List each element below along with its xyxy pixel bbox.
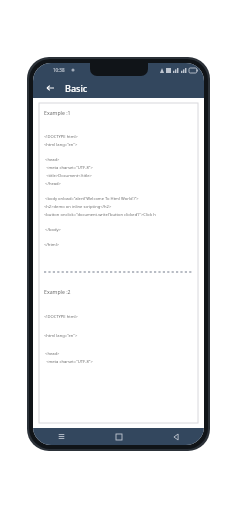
staticText: 10:38 (53, 67, 65, 73)
staticText: </head> (44, 181, 61, 187)
staticText: <head> (44, 351, 60, 357)
staticText: <h2>demo on inline scripting</h2> (44, 204, 112, 210)
button[interactable]: Home (90, 428, 147, 445)
staticText: <button onclick="document.write('button … (44, 212, 156, 218)
staticText: <meta charset="UTF-8"> (44, 165, 93, 171)
staticText: <!DOCTYPE html> (44, 134, 78, 140)
staticText: <body onload="alert('Welcome To Html Wor… (44, 196, 139, 202)
staticText: </html> (44, 242, 60, 248)
staticText: Basic (65, 82, 88, 94)
staticText: </body> (44, 227, 61, 233)
staticText: <head> (44, 157, 60, 163)
staticText: <meta charset="UTF-8"> (44, 359, 93, 365)
button[interactable]: Back (147, 428, 204, 445)
staticText: <html lang="en"> (44, 333, 78, 339)
staticText: <!DOCTYPE html> (44, 314, 78, 320)
staticText: Example :2 (44, 288, 71, 295)
staticText: <html lang="en"> (44, 142, 78, 148)
staticText: <title>Document</title> (44, 173, 92, 179)
staticText: Example :1 (44, 109, 71, 116)
button[interactable]: Recents (33, 428, 90, 445)
button[interactable]: Back (43, 81, 57, 95)
